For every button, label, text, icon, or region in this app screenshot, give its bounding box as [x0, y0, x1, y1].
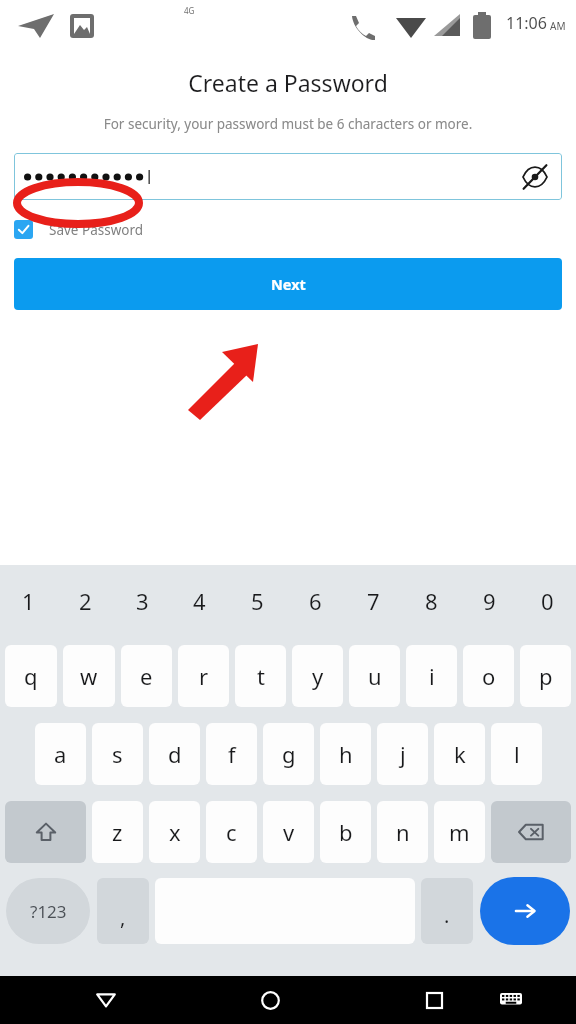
staticText: 2 [79, 586, 92, 616]
button[interactable]: s [92, 723, 143, 785]
staticText: 4 [193, 586, 206, 616]
button[interactable]: c [206, 801, 257, 863]
button[interactable]: ?123 [6, 878, 90, 944]
staticText: Save Password [49, 221, 144, 239]
button[interactable]: Save Password [14, 220, 144, 239]
button[interactable]: y [292, 645, 343, 707]
staticText: d [168, 739, 182, 769]
staticText: j [400, 739, 406, 769]
staticText: 9 [483, 586, 496, 616]
button[interactable]: r [178, 645, 229, 707]
staticText: i [429, 661, 435, 691]
staticText: l [514, 739, 520, 769]
staticText: v [283, 817, 295, 847]
button[interactable]: i [406, 645, 457, 707]
button[interactable]: 7 [344, 565, 402, 637]
staticText: h [339, 739, 353, 769]
staticText: p [539, 661, 553, 691]
staticText: g [282, 739, 296, 769]
staticText: t [257, 661, 265, 691]
staticText: e [140, 661, 153, 691]
button[interactable]: 4 [171, 565, 228, 637]
staticText: Next [271, 274, 306, 294]
button[interactable]: Shift [5, 801, 86, 863]
button[interactable]: h [320, 723, 371, 785]
staticText: s [112, 739, 123, 769]
staticText: Create a Password [0, 67, 576, 98]
button[interactable]: j [377, 723, 428, 785]
button[interactable]: 9 [460, 565, 518, 637]
button[interactable]: 6 [286, 565, 344, 637]
button[interactable]: u [349, 645, 400, 707]
button[interactable]: v [263, 801, 314, 863]
staticText: f [228, 739, 236, 769]
button[interactable]: Show password [520, 162, 550, 192]
staticText: 3 [136, 586, 149, 616]
button[interactable]: t [235, 645, 286, 707]
staticText: 5 [251, 586, 264, 616]
staticText: k [454, 739, 466, 769]
button[interactable]: f [206, 723, 257, 785]
button[interactable]: 8 [402, 565, 460, 637]
button[interactable]: Switch keyboard [487, 976, 535, 1024]
staticText: w [80, 661, 98, 691]
staticText: c [226, 817, 237, 847]
button[interactable]: d [149, 723, 200, 785]
staticText: y [312, 661, 324, 691]
staticText: x [169, 817, 181, 847]
staticText: q [24, 661, 38, 691]
button[interactable]: b [320, 801, 371, 863]
staticText: r [199, 661, 209, 691]
staticText: 6 [309, 586, 322, 616]
button[interactable]: Backspace [491, 801, 571, 863]
staticText: . [444, 902, 450, 929]
button[interactable]: x [149, 801, 200, 863]
staticText: , [120, 904, 126, 931]
staticText: n [396, 817, 410, 847]
button[interactable]: 2 [57, 565, 114, 637]
button[interactable]: l [491, 723, 542, 785]
button[interactable]: 1 [0, 565, 57, 637]
staticText: u [368, 661, 382, 691]
button[interactable]: g [263, 723, 314, 785]
button[interactable]: 3 [114, 565, 171, 637]
button[interactable]: a [35, 723, 86, 785]
button[interactable]: w [63, 645, 115, 707]
staticText: 7 [367, 586, 380, 616]
staticText: z [112, 817, 123, 847]
staticText: 1 [22, 586, 35, 616]
staticText: o [482, 661, 496, 691]
button[interactable]: 5 [228, 565, 286, 637]
button[interactable]: Next [14, 258, 562, 310]
button[interactable]: Show password [14, 153, 562, 200]
staticText: a [54, 739, 67, 769]
button[interactable]: o [463, 645, 514, 707]
button[interactable]: Home [246, 976, 294, 1024]
button[interactable]: p [520, 645, 571, 707]
staticText: m [449, 817, 470, 847]
staticText: 8 [425, 586, 438, 616]
button[interactable]: . [421, 878, 473, 944]
staticText: For security, your password must be 6 ch… [12, 115, 564, 133]
button[interactable]: e [121, 645, 172, 707]
button[interactable]: 0 [518, 565, 576, 637]
staticText: AM [550, 19, 566, 33]
staticText: 0 [541, 586, 554, 616]
staticText: 11:06 [506, 12, 547, 34]
button[interactable]: , [97, 878, 149, 944]
button[interactable]: Recents [410, 976, 458, 1024]
button[interactable]: Enter [480, 877, 570, 945]
button[interactable]: q [5, 645, 57, 707]
button[interactable]: Back [82, 976, 130, 1024]
staticText: b [339, 817, 353, 847]
button[interactable]: n [377, 801, 428, 863]
staticText: ?123 [30, 900, 67, 923]
button[interactable]: k [434, 723, 485, 785]
button[interactable]: z [92, 801, 143, 863]
button[interactable]: m [434, 801, 485, 863]
staticText: 4G [184, 5, 195, 16]
